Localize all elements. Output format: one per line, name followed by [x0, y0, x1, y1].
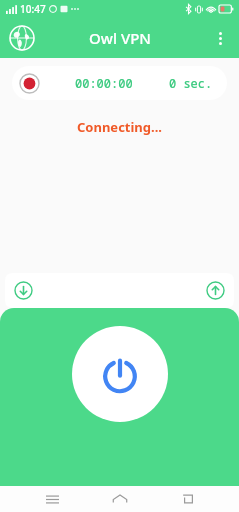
button[interactable]: Back — [171, 486, 203, 512]
button[interactable]: 00:00:00 — [12, 66, 227, 100]
staticText: 0 sec. — [169, 75, 213, 91]
staticText: Connecting... — [0, 118, 239, 136]
button[interactable]: Connect VPN — [72, 326, 168, 422]
button[interactable]: Home — [104, 486, 136, 512]
staticText: 10:47 — [20, 2, 46, 16]
button[interactable]: Recent apps — [36, 486, 68, 512]
staticText: 00:00:00 — [75, 75, 133, 91]
button[interactable]: More options — [205, 23, 235, 53]
other: Upload speed — [206, 281, 225, 300]
button[interactable]: Download speed — [5, 273, 234, 308]
staticText: Owl VPN — [89, 28, 151, 48]
button[interactable]: Select server location — [6, 22, 38, 54]
other: Download speed — [14, 281, 33, 300]
